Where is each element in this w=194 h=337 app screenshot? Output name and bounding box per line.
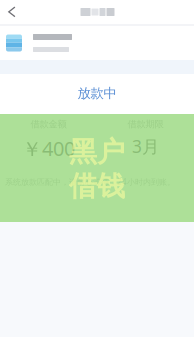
staticText: 系统放款匹配中，请耐心等待，24小时内到账。 xyxy=(5,176,175,187)
staticText: 放款中 xyxy=(77,85,116,101)
staticText: 借款期限 xyxy=(127,118,163,130)
button[interactable] xyxy=(0,26,194,60)
staticText: 黑户 xyxy=(69,135,125,169)
staticText: 3月 xyxy=(132,135,159,158)
staticText: 借钱 xyxy=(69,169,125,203)
button[interactable]: Back xyxy=(0,0,24,24)
staticText: ￥400 xyxy=(22,135,75,161)
staticText: 借款金额 xyxy=(30,118,66,130)
